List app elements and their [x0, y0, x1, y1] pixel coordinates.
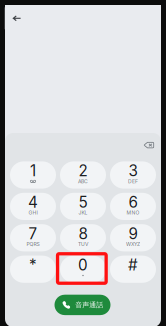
- staticText: 4: [28, 193, 38, 211]
- button[interactable]: 7: [10, 224, 56, 251]
- button[interactable]: Back: [5, 7, 29, 29]
- button[interactable]: Delete: [139, 138, 159, 153]
- staticText: 0: [78, 256, 88, 274]
- staticText: 2: [78, 162, 87, 180]
- button[interactable]: 1: [10, 161, 56, 189]
- staticText: ABC: [78, 178, 88, 184]
- button[interactable]: 3: [110, 161, 156, 189]
- button[interactable]: 9: [110, 224, 156, 251]
- staticText: #: [128, 256, 138, 274]
- staticText: MNO: [126, 210, 139, 216]
- staticText: DEF: [128, 178, 138, 184]
- staticText: TUV: [78, 241, 88, 247]
- staticText: PQRS: [26, 241, 39, 247]
- staticText: 9: [128, 224, 137, 243]
- button[interactable]: 6: [110, 193, 156, 220]
- staticText: WXYZ: [126, 241, 140, 247]
- staticText: 3: [128, 162, 137, 180]
- staticText: JKL: [78, 210, 87, 216]
- staticText: 6: [128, 193, 137, 211]
- staticText: 7: [28, 224, 37, 243]
- button[interactable]: 4: [10, 193, 56, 220]
- staticText: 1: [30, 162, 36, 180]
- button[interactable]: 0: [60, 256, 106, 283]
- button[interactable]: 8: [60, 224, 106, 251]
- staticText: 8: [78, 224, 87, 243]
- button[interactable]: #: [110, 256, 156, 283]
- staticText: 5: [78, 193, 87, 211]
- staticText: *: [29, 256, 37, 274]
- button[interactable]: *: [10, 256, 56, 283]
- button[interactable]: 音声通話: [54, 295, 110, 315]
- staticText: GHI: [28, 210, 37, 216]
- staticText: 音声通話: [75, 300, 103, 309]
- button[interactable]: 5: [60, 193, 106, 220]
- button[interactable]: 2: [60, 161, 106, 189]
